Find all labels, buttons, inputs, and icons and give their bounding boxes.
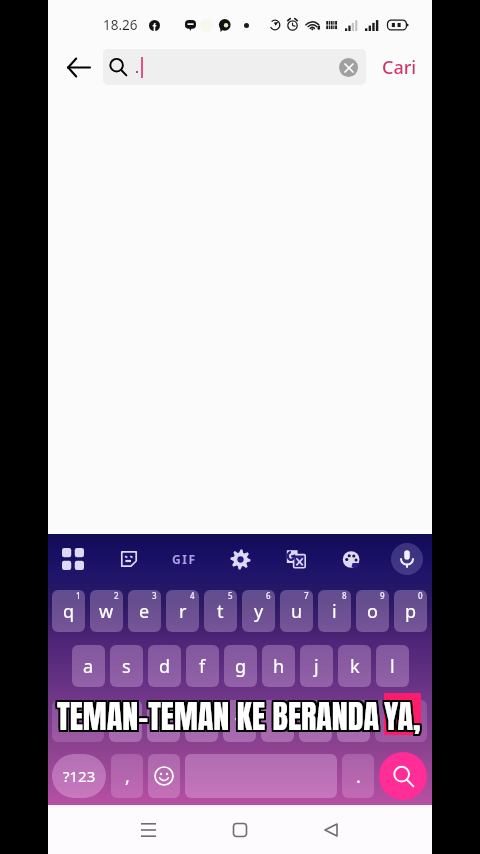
button[interactable]: Cari [366,41,432,93]
staticText: TEMAN-TEMAN KE BERANDA [59,692,382,736]
staticText: YA, [384,692,421,736]
staticText: GIF [172,551,197,567]
staticText: 9 [380,590,385,601]
button[interactable]: n [299,700,332,742]
staticText: v [235,709,245,734]
staticText: r [179,599,187,624]
button[interactable]: u [280,590,313,632]
staticText: y [254,599,264,624]
button[interactable]: s [110,645,143,687]
staticText: ?123 [63,766,96,786]
staticText: YA, [382,692,419,736]
button[interactable]: d [148,645,181,687]
button[interactable]: e [128,590,161,632]
staticText: . [135,57,140,77]
button[interactable]: Translate [274,537,318,581]
staticText: TEMAN-TEMAN KE BERANDA [55,694,378,738]
button[interactable]: Back [307,806,355,854]
button[interactable]: Voice input [385,537,429,581]
staticText: 0 [418,590,423,601]
button[interactable]: Space [185,754,337,798]
button[interactable]: v [223,700,256,742]
staticText: TEMAN-TEMAN KE BERANDA [59,694,382,738]
staticText: h [273,654,285,679]
button[interactable]: l [376,645,409,687]
staticText: p [405,599,417,624]
button[interactable]: Stickers [107,537,151,581]
button[interactable]: Clear [339,58,358,77]
button[interactable]: i [318,590,351,632]
button[interactable]: Recents [124,806,172,854]
button[interactable]: z [109,700,142,742]
button[interactable]: Home [216,806,264,854]
button[interactable]: k [338,645,371,687]
button[interactable]: r [166,590,199,632]
staticText: 4 [190,590,195,601]
staticText: Cari [382,55,417,80]
staticText: 5 [228,590,233,601]
staticText: c [197,709,206,734]
staticText: 3 [152,590,157,601]
button[interactable]: m [337,700,370,742]
staticText: d [159,654,171,679]
staticText: w [99,599,114,624]
staticText: q [63,599,75,624]
button[interactable]: o [356,590,389,632]
button[interactable]: ?123 [52,754,106,798]
staticText: j [314,654,319,679]
staticText: f [199,654,206,679]
staticText: b [272,709,284,734]
staticText: , [125,764,130,789]
button[interactable]: Backspace [375,700,427,742]
staticText: z [121,709,130,734]
button[interactable]: Period [342,754,374,798]
staticText: TEMAN-TEMAN KE BERANDA [55,690,378,734]
button[interactable]: h [262,645,295,687]
button[interactable]: y [242,590,275,632]
button[interactable]: Theme [329,537,373,581]
staticText: YA, [384,694,421,738]
button[interactable]: Search [379,752,427,800]
staticText: YA, [386,692,423,736]
staticText: TEMAN-TEMAN KE BERANDA [57,690,380,734]
button[interactable]: Comma [111,754,143,798]
button[interactable]: Settings [218,537,262,581]
staticText: u [291,599,303,624]
button[interactable]: q [52,590,85,632]
button[interactable]: Shift [52,700,104,742]
staticText: g [235,654,247,679]
button[interactable]: Back [48,41,103,93]
button[interactable]: Emoji [148,754,180,798]
staticText: l [390,654,395,679]
button[interactable]: p [394,590,427,632]
button[interactable]: b [261,700,294,742]
staticText: TEMAN-TEMAN KE BERANDA [57,694,380,738]
button[interactable]: f [186,645,219,687]
staticText: YA, [382,690,419,734]
staticText: TEMAN-TEMAN KE BERANDA [59,690,382,734]
button[interactable]: t [204,590,237,632]
button[interactable]: j [300,645,333,687]
button[interactable]: c [185,700,218,742]
button[interactable]: x [147,700,180,742]
staticText: s [122,654,131,679]
button[interactable]: a [72,645,105,687]
button[interactable]: w [90,590,123,632]
staticText: YA, [384,690,421,734]
staticText: x [159,709,169,734]
staticText: YA, [386,690,423,734]
staticText: 2 [114,590,119,601]
staticText: 7 [304,590,309,601]
button[interactable]: g [224,645,257,687]
staticText: a [83,654,94,679]
button[interactable]: Apps [51,537,95,581]
staticText: i [332,599,337,624]
staticText: 6 [266,590,271,601]
staticText: t [217,599,224,624]
staticText: TEMAN-TEMAN KE BERANDA [55,692,378,736]
button[interactable]: GIF [162,537,206,581]
staticText: TEMAN-TEMAN KE BERANDA [57,692,380,736]
staticText: o [367,599,378,624]
button[interactable]: . [103,49,366,85]
staticText: 18.26 [103,16,138,34]
